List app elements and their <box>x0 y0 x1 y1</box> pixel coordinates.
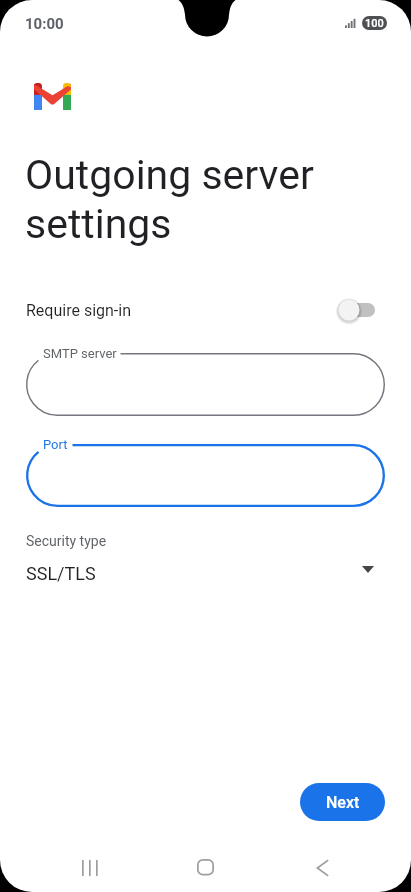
button[interactable]: Next <box>300 783 385 821</box>
button[interactable]: Recent apps <box>58 845 122 890</box>
button[interactable]: Home <box>174 845 238 890</box>
staticText: Outgoing server settings <box>25 151 314 248</box>
staticText: Next <box>326 793 360 812</box>
staticText: SSL/TLS <box>26 563 96 584</box>
staticText: Security type <box>26 533 107 549</box>
staticText: 100 <box>365 17 384 30</box>
staticText: 10:00 <box>25 15 64 33</box>
button[interactable]: Back <box>289 845 353 890</box>
button[interactable]: Port <box>26 444 385 507</box>
staticText: Require sign-in <box>26 301 131 320</box>
button[interactable]: Security type <box>26 533 374 584</box>
button[interactable]: Require sign-in <box>0 288 411 332</box>
button[interactable]: SMTP server <box>26 353 385 416</box>
staticText: SMTP server <box>43 346 117 361</box>
staticText: Port <box>43 437 68 452</box>
